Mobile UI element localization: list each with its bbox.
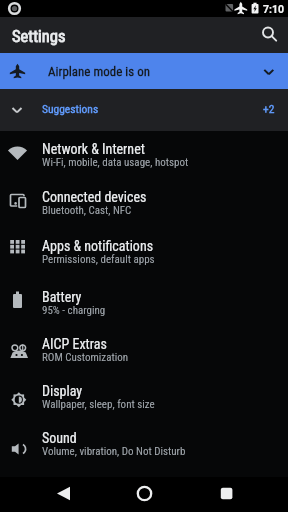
staticText: Network & Internet (42, 141, 145, 157)
button[interactable] (120, 477, 168, 512)
staticText: ROM Customization (42, 351, 129, 364)
staticText: Sound (42, 430, 77, 446)
button[interactable]: Display (0, 373, 288, 420)
staticText: Permissions, default apps (42, 253, 155, 266)
button[interactable]: Connected devices (0, 179, 288, 228)
staticText: Wallpaper, sleep, font size (42, 398, 155, 411)
button[interactable] (252, 17, 288, 53)
button[interactable]: AICP Extras (0, 326, 288, 373)
staticText: Display (42, 383, 83, 399)
button[interactable]: Airplane mode is on (0, 53, 288, 89)
button[interactable]: Apps & notifications (0, 228, 288, 279)
staticText: +2 (263, 102, 275, 115)
button[interactable]: Sound (0, 420, 288, 467)
staticText: Volume, vibration, Do Not Disturb (42, 445, 186, 458)
staticText: 95% - charging (42, 304, 106, 317)
button[interactable] (202, 477, 250, 512)
staticText: Bluetooth, Cast, NFC (42, 204, 132, 217)
staticText: Suggestions (42, 102, 99, 115)
staticText: Airplane mode is on (48, 64, 150, 79)
button[interactable]: Battery (0, 279, 288, 326)
staticText: Connected devices (42, 189, 147, 205)
button[interactable]: Network & Internet (0, 131, 288, 179)
button[interactable] (40, 477, 88, 512)
staticText: Settings (12, 27, 66, 46)
staticText: Battery (42, 289, 82, 305)
staticText: AICP Extras (42, 336, 107, 352)
staticText: Apps & notifications (42, 238, 154, 254)
button[interactable]: Suggestions (0, 89, 288, 131)
staticText: Wi-Fi, mobile, data usage, hotspot (42, 156, 189, 169)
staticText: 7:10 (263, 3, 285, 15)
